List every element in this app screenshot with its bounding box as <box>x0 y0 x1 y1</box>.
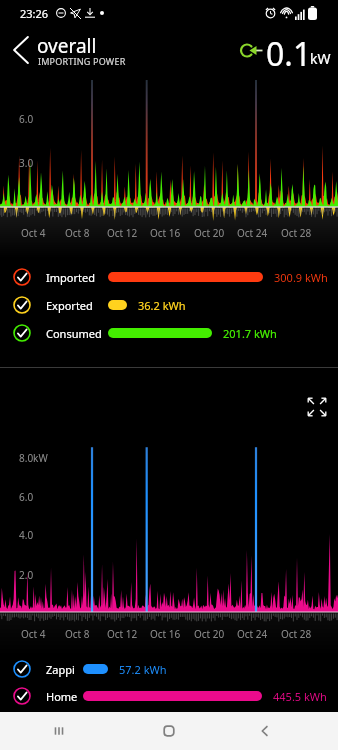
button[interactable]: Fullscreen <box>306 396 328 418</box>
staticText: Oct 20 <box>194 627 225 641</box>
staticText: Consumed <box>46 326 102 341</box>
button[interactable]: Home <box>150 712 188 750</box>
staticText: 6.0 <box>19 112 34 126</box>
staticText: kW <box>310 49 331 68</box>
staticText: Imported <box>46 270 95 285</box>
staticText: Oct 28 <box>281 226 312 240</box>
button[interactable]: Back <box>246 712 284 750</box>
button[interactable]: Consumed <box>0 320 338 347</box>
staticText: 201.7 kWh <box>223 326 277 341</box>
staticText: 3.0 <box>19 156 34 170</box>
staticText: 0.1 <box>266 32 312 76</box>
staticText: Exported <box>46 298 93 313</box>
button[interactable]: Home <box>0 683 338 710</box>
staticText: 2.0 <box>19 568 34 582</box>
staticText: Oct 24 <box>237 627 268 641</box>
button[interactable]: Back <box>8 32 34 68</box>
staticText: Oct 20 <box>194 226 225 240</box>
staticText: Oct 12 <box>107 226 138 240</box>
staticText: Oct 16 <box>150 226 181 240</box>
staticText: overall <box>37 33 97 59</box>
staticText: 8.0kW <box>19 451 48 465</box>
staticText: IMPORTING POWER <box>38 55 126 67</box>
button[interactable]: Zappi <box>0 656 338 683</box>
staticText: Home <box>46 689 78 704</box>
staticText: 300.9 kWh <box>274 270 328 285</box>
staticText: Oct 28 <box>281 627 312 641</box>
staticText: Oct 12 <box>107 627 138 641</box>
staticText: Oct 4 <box>21 627 46 641</box>
staticText: 445.5 kWh <box>273 689 327 704</box>
staticText: Oct 4 <box>21 226 46 240</box>
staticText: Oct 16 <box>150 627 181 641</box>
staticText: 36.2 kWh <box>138 298 186 313</box>
staticText: Oct 24 <box>237 226 268 240</box>
staticText: Oct 8 <box>65 226 90 240</box>
button[interactable]: Imported <box>0 264 338 291</box>
staticText: 23:26 <box>20 6 49 21</box>
staticText: 4.0 <box>19 528 34 542</box>
button[interactable]: Recent apps <box>40 712 78 750</box>
button[interactable]: Exported <box>0 292 338 319</box>
staticText: 57.2 kWh <box>119 662 167 677</box>
staticText: Zappi <box>46 662 75 677</box>
staticText: 6.0 <box>19 490 34 504</box>
staticText: Oct 8 <box>65 627 90 641</box>
